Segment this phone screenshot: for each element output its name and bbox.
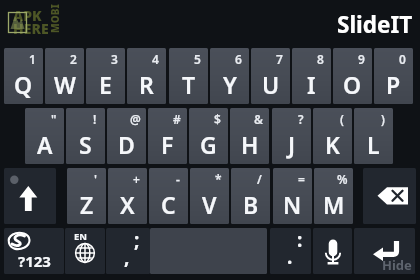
staticText: . (287, 244, 293, 270)
button[interactable]: Enter (354, 228, 415, 274)
button[interactable]: / (231, 168, 270, 224)
staticText: 5 (194, 51, 201, 67)
staticText: Z (80, 189, 94, 220)
staticText: O (343, 69, 362, 100)
staticText: ' (94, 171, 98, 187)
staticText: P (386, 69, 401, 100)
staticText: J (288, 129, 296, 160)
button[interactable]: 3 (86, 48, 125, 104)
staticText: EN (74, 230, 88, 243)
button[interactable]: ? (272, 108, 311, 164)
staticText: V (202, 189, 217, 220)
button[interactable]: Shift (4, 168, 56, 224)
staticText: T (182, 69, 196, 100)
staticText: 3 (111, 51, 118, 67)
staticText: Y (223, 69, 237, 100)
staticText: 2 (70, 51, 77, 67)
button[interactable]: = (273, 168, 312, 224)
button[interactable]: Symbols (4, 228, 64, 274)
staticText: = (298, 171, 305, 187)
staticText: N (283, 189, 302, 220)
staticText: U (262, 69, 280, 100)
staticText: S (79, 129, 92, 160)
button[interactable]: 9 (333, 48, 372, 104)
staticText: HERE (13, 19, 49, 38)
button[interactable]: ) (354, 108, 393, 164)
button[interactable]: * (190, 168, 229, 224)
staticText: M (323, 189, 345, 220)
staticText: ? (298, 111, 304, 127)
button[interactable]: @ (107, 108, 146, 164)
staticText: APK (13, 6, 42, 25)
staticText: ; (134, 228, 140, 253)
staticText: # (173, 111, 181, 127)
staticText: E (99, 69, 112, 100)
staticText: Q (14, 69, 33, 100)
button[interactable]: $ (189, 108, 228, 164)
staticText: ( (340, 111, 344, 127)
staticText: D (118, 129, 135, 160)
button[interactable]: 6 (210, 48, 249, 104)
staticText: 6 (235, 51, 242, 67)
button[interactable]: 7 (251, 48, 290, 104)
staticText: R (139, 69, 154, 100)
button[interactable]: ! (66, 108, 105, 164)
staticText: L (367, 129, 380, 160)
staticText: + (133, 171, 140, 187)
staticText: " (51, 111, 57, 127)
button[interactable]: + (108, 168, 147, 224)
button[interactable]: ( (313, 108, 352, 164)
staticText: $ (214, 111, 221, 127)
staticText: 0 (399, 51, 406, 67)
staticText: Hide (382, 256, 412, 274)
staticText: % (337, 171, 348, 187)
staticText: X (120, 189, 135, 220)
staticText: G (200, 129, 217, 160)
staticText: * (215, 171, 222, 187)
staticText: I (307, 69, 316, 100)
staticText: C (161, 189, 176, 220)
staticText: SlideIT (337, 9, 413, 40)
button[interactable]: 8 (292, 48, 331, 104)
button[interactable]: Voice input (313, 228, 352, 274)
staticText: B (243, 189, 259, 220)
staticText: MOBI (48, 4, 62, 33)
button[interactable]: # (148, 108, 187, 164)
staticText: ?123 (18, 251, 51, 271)
staticText: F (161, 129, 174, 160)
staticText: H (241, 129, 259, 160)
button[interactable]: 4 (127, 48, 166, 104)
staticText: - (176, 171, 180, 187)
button[interactable]: " (25, 108, 64, 164)
staticText: , (124, 244, 130, 270)
staticText: / (257, 171, 262, 187)
staticText: ) (381, 111, 385, 127)
button[interactable]: 0 (374, 48, 413, 104)
button[interactable]: 5 (169, 48, 208, 104)
button[interactable]: % (314, 168, 353, 224)
staticText: K (325, 129, 340, 160)
button[interactable]: 1 (4, 48, 43, 104)
staticText: A (37, 129, 53, 160)
button[interactable]: - (149, 168, 188, 224)
staticText: @ (130, 111, 141, 127)
staticText: & (254, 111, 263, 127)
button[interactable]: Colon and period (270, 228, 311, 274)
staticText: ! (93, 111, 97, 127)
button[interactable]: Change language (65, 228, 105, 274)
staticText: 9 (358, 51, 365, 67)
button[interactable]: Backspace (363, 168, 416, 224)
staticText: 1 (29, 51, 36, 67)
staticText: W (54, 69, 76, 100)
button[interactable]: 2 (45, 48, 84, 104)
button[interactable]: & (230, 108, 269, 164)
button[interactable]: Semicolon and comma (106, 228, 150, 274)
staticText: 7 (276, 51, 283, 67)
staticText: 8 (317, 51, 324, 67)
staticText: 4 (152, 51, 159, 67)
staticText: : (297, 228, 303, 253)
button[interactable]: ' (67, 168, 106, 224)
